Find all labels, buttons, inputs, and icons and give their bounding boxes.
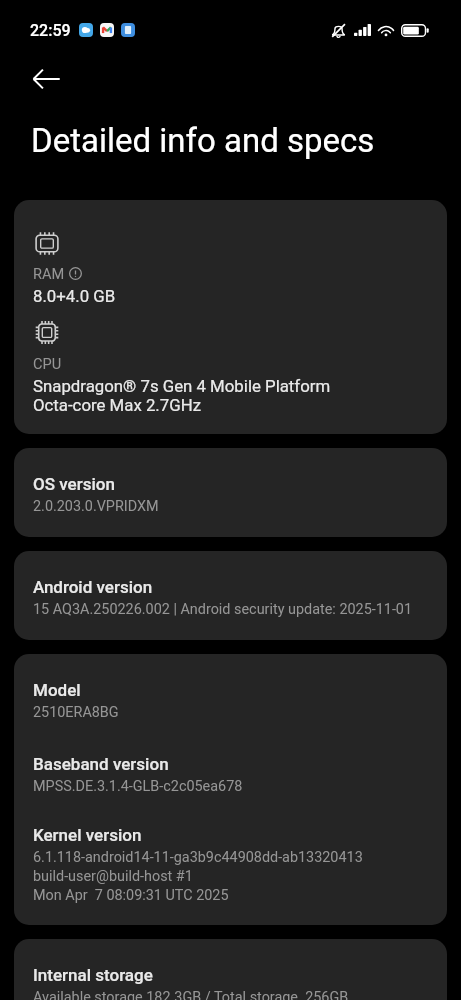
staticText: Available storage 182.3GB / Total storag… bbox=[33, 989, 349, 1000]
staticText: 15 AQ3A.250226.002 | Android security up… bbox=[33, 601, 413, 618]
staticText: OS version bbox=[33, 474, 115, 494]
staticText: Baseband version bbox=[33, 754, 169, 774]
staticText: MPSS.DE.3.1.4-GLB-c2c05ea678 bbox=[33, 778, 243, 795]
button[interactable]: Android version bbox=[14, 551, 447, 640]
staticText: Kernel version bbox=[33, 825, 142, 845]
staticText: Detailed info and specs bbox=[31, 121, 375, 160]
button[interactable]: Internal storage bbox=[14, 939, 447, 1000]
staticText: 6.1.118-android14-11-ga3b9c44908dd-ab133… bbox=[33, 849, 363, 903]
staticText: 8.0+4.0 GB bbox=[33, 286, 116, 306]
staticText: 22:59 bbox=[30, 21, 71, 40]
button[interactable]: Back bbox=[24, 57, 68, 101]
staticText: Snapdragon® 7s Gen 4 Mobile Platform Oct… bbox=[33, 376, 331, 416]
staticText: 2510ERA8BG bbox=[33, 704, 119, 721]
button[interactable]: Model bbox=[14, 654, 447, 925]
staticText: Internal storage bbox=[33, 965, 153, 985]
button[interactable]: RAM bbox=[14, 200, 447, 434]
staticText: RAM bbox=[33, 265, 65, 282]
staticText: Android version bbox=[33, 577, 153, 597]
button[interactable]: OS version bbox=[14, 448, 447, 537]
staticText: Model bbox=[33, 680, 81, 700]
staticText: 2.0.203.0.VPRIDXM bbox=[33, 498, 159, 515]
staticText: CPU bbox=[33, 355, 62, 372]
